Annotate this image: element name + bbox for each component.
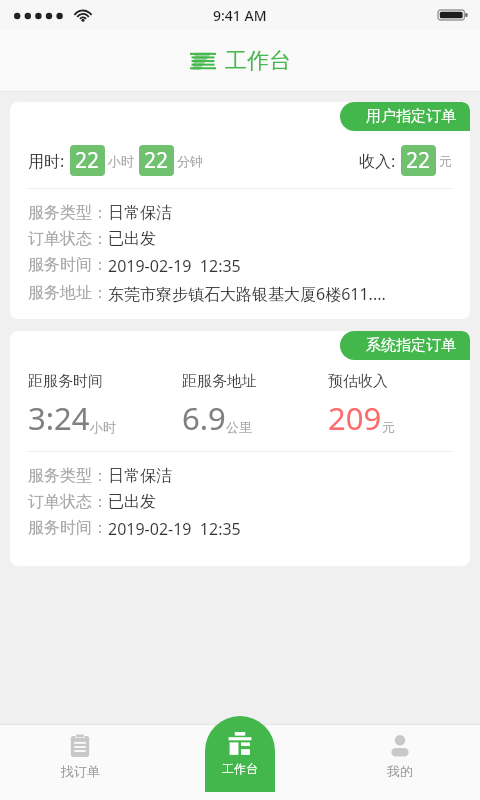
staticText: 找订单	[61, 763, 100, 779]
button[interactable]: 用户指定订单	[10, 102, 470, 319]
staticText: 3:24	[28, 397, 90, 439]
button[interactable]: 工作台	[205, 716, 275, 792]
staticText: 6.9	[182, 397, 226, 439]
staticText: 我的	[387, 763, 413, 779]
button[interactable]: 找订单	[0, 724, 160, 800]
staticText: 用户指定订单	[366, 107, 456, 126]
staticText: 距服务时间	[28, 372, 103, 391]
staticText: 服务类型：	[28, 466, 108, 486]
staticText: 分钟	[177, 153, 203, 169]
staticText: 元	[439, 153, 452, 169]
staticText: 预估收入	[328, 372, 388, 391]
staticText: 日常保洁	[108, 203, 172, 223]
staticText: 工作台	[225, 47, 291, 75]
staticText: 公里	[226, 419, 252, 435]
staticText: 小时	[108, 153, 134, 169]
staticText: 东莞市寮步镇石大路银基大厦6楼611....	[108, 283, 386, 305]
other: 找订单	[68, 734, 92, 758]
staticText: 服务时间：	[28, 255, 108, 275]
staticText: 22	[144, 146, 169, 175]
staticText: 订单状态：	[28, 229, 108, 249]
staticText: 服务时间：	[28, 518, 108, 538]
staticText: 服务地址：	[28, 283, 108, 303]
staticText: 22	[406, 146, 431, 175]
staticText: 日常保洁	[108, 466, 172, 486]
button[interactable]: 系统指定订单	[10, 331, 470, 566]
staticText: 工作台	[222, 761, 258, 776]
staticText: 已出发	[108, 492, 156, 512]
staticText: 2019-02-19 12:35	[108, 255, 241, 277]
staticText: 2019-02-19 12:35	[108, 518, 241, 540]
staticText: 距服务地址	[182, 372, 257, 391]
staticText: 9:41 AM	[213, 6, 267, 25]
button[interactable]: 我的	[320, 724, 480, 800]
staticText: 已出发	[108, 229, 156, 249]
staticText: 小时	[90, 419, 116, 435]
staticText: 209	[328, 397, 382, 439]
staticText: 22	[75, 146, 100, 175]
staticText: 用时:	[28, 150, 65, 172]
staticText: 收入:	[359, 150, 396, 172]
staticText: 系统指定订单	[366, 336, 456, 355]
other: 我的	[388, 734, 412, 758]
staticText: 订单状态：	[28, 492, 108, 512]
staticText: 服务类型：	[28, 203, 108, 223]
staticText: 元	[382, 419, 395, 435]
